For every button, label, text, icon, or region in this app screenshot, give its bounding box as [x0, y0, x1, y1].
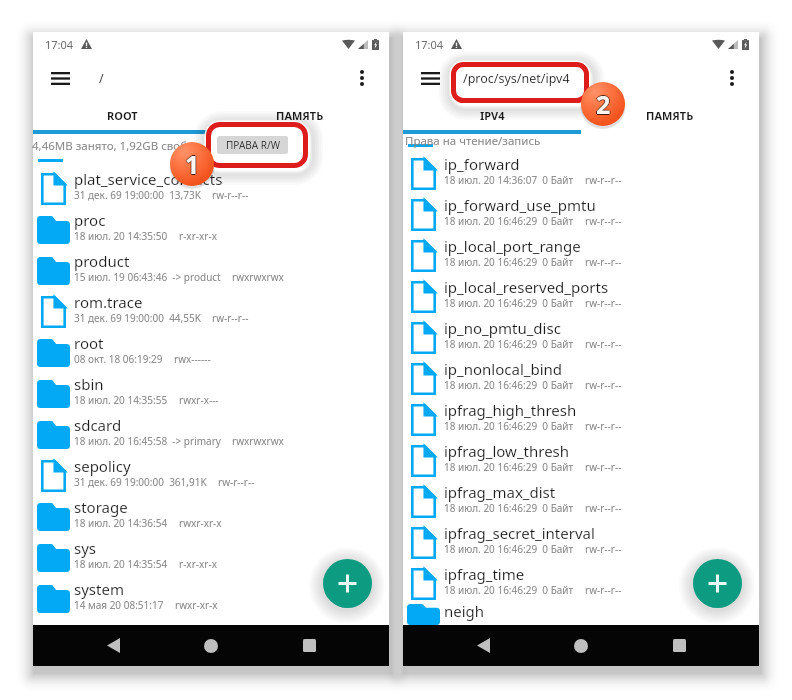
button[interactable]: ПАМЯТЬ — [581, 100, 759, 130]
button[interactable]: rom.trace — [33, 291, 389, 332]
staticText: / — [99, 70, 104, 87]
staticText: rw-r--r-- — [585, 460, 622, 474]
staticText: ip_local_port_range — [444, 236, 581, 256]
button[interactable]: Add — [693, 559, 742, 608]
staticText: sdcard — [74, 415, 122, 435]
staticText: ip_local_reserved_ports — [444, 277, 609, 297]
button[interactable]: ПРАВА R/W — [217, 136, 288, 154]
staticText: 1 — [185, 148, 200, 182]
staticText: rw-r--r-- — [585, 542, 622, 556]
staticText: 18 июл. 20 16:46:29 0 Байт — [444, 419, 574, 433]
staticText: rw-r--r-- — [585, 214, 622, 228]
button[interactable]: ip_forward_use_pmtu — [403, 194, 759, 235]
button[interactable]: ip_no_pmtu_disc — [403, 317, 759, 358]
button[interactable]: Recents — [630, 625, 728, 666]
button[interactable]: Add — [323, 559, 372, 608]
button[interactable]: IPV4 — [403, 100, 581, 130]
button[interactable]: proc — [33, 209, 389, 250]
staticText: 18 июл. 20 16:46:29 0 Байт — [444, 214, 574, 228]
staticText: Права на чтение/запись — [405, 133, 541, 149]
button[interactable]: plat_service_contacts — [33, 168, 389, 209]
staticText: 31 дек. 69 19:00:00 44,55K — [74, 311, 201, 325]
button[interactable]: More options — [347, 63, 377, 93]
button[interactable]: ip_local_port_range — [403, 235, 759, 276]
button[interactable]: ПАМЯТЬ — [211, 100, 389, 130]
button[interactable]: ip_nonlocal_bind — [403, 358, 759, 399]
button[interactable]: ipfrag_low_thresh — [403, 440, 759, 481]
button[interactable]: sepolicy — [33, 455, 389, 496]
staticText: neigh — [444, 601, 485, 621]
staticText: rwxr-xr-x — [175, 598, 218, 612]
staticText: rw-r--r-- — [585, 583, 622, 597]
staticText: rw-r--r-- — [585, 378, 622, 392]
staticText: ip_nonlocal_bind — [444, 359, 563, 379]
button[interactable]: More options — [717, 63, 747, 93]
staticText: sepolicy — [74, 456, 131, 476]
staticText: proc — [74, 210, 106, 230]
staticText: rw-r--r-- — [585, 296, 622, 310]
staticText: root — [74, 333, 104, 353]
button[interactable]: ipfrag_secret_interval — [403, 522, 759, 563]
staticText: r-xr-xr-x — [179, 557, 217, 571]
staticText: 31 дек. 69 19:00:00 13,73K — [74, 188, 201, 202]
staticText: rwxr-x--- — [179, 393, 219, 407]
staticText: rwxrwxrwx — [232, 434, 284, 448]
staticText: 18 июл. 20 16:46:29 0 Байт — [444, 255, 574, 269]
button[interactable]: Back — [434, 625, 532, 666]
button[interactable]: ipfrag_time — [403, 563, 759, 604]
staticText: 31 дек. 69 19:00:00 361,91K — [74, 475, 207, 489]
staticText: ip_forward_use_pmtu — [444, 195, 596, 215]
staticText: r-xr-xr-x — [179, 229, 217, 243]
staticText: ipfrag_max_dist — [444, 482, 556, 502]
staticText: rw-r--r-- — [212, 311, 249, 325]
staticText: ROOT — [107, 108, 138, 123]
button[interactable]: ipfrag_high_thresh — [403, 399, 759, 440]
staticText: rwxr-xr-x — [179, 516, 222, 530]
button[interactable]: Back — [64, 625, 162, 666]
staticText: 18 июл. 20 16:46:29 0 Байт — [444, 460, 574, 474]
staticText: ПАМЯТЬ — [646, 108, 694, 123]
button[interactable]: system — [33, 578, 389, 619]
staticText: 2 — [596, 86, 611, 120]
button[interactable]: sys — [33, 537, 389, 578]
staticText: 2 — [596, 87, 611, 121]
staticText: 18 июл. 20 14:36:07 0 Байт — [444, 173, 574, 187]
staticText: 15 июл. 19 06:43:46 -> product — [74, 270, 221, 284]
staticText: rwx------ — [174, 352, 211, 366]
button[interactable]: sdcard — [33, 414, 389, 455]
staticText: 2 — [596, 88, 611, 122]
staticText: system — [74, 579, 124, 599]
staticText: 18 июл. 20 16:46:29 0 Байт — [444, 378, 574, 392]
staticText: rw-r--r-- — [212, 188, 249, 202]
button[interactable]: Menu — [45, 63, 75, 93]
staticText: rw-r--r-- — [585, 337, 622, 351]
staticText: 18 июл. 20 14:35:54 — [74, 557, 168, 571]
staticText: sbin — [74, 374, 104, 394]
staticText: 14 мая 20 08:51:17 — [74, 598, 164, 612]
button[interactable]: neigh — [403, 604, 759, 625]
button[interactable]: product — [33, 250, 389, 291]
staticText: ipfrag_time — [444, 564, 525, 584]
button[interactable]: ROOT — [33, 100, 211, 130]
button[interactable]: root — [33, 332, 389, 373]
staticText: 1 — [185, 146, 200, 180]
staticText: ip_forward — [444, 154, 520, 174]
button[interactable]: ipfrag_max_dist — [403, 481, 759, 522]
button[interactable]: sbin — [33, 373, 389, 414]
button[interactable]: ip_local_reserved_ports — [403, 276, 759, 317]
staticText: ipfrag_high_thresh — [444, 400, 577, 420]
button[interactable]: Menu — [415, 63, 445, 93]
staticText: rw-r--r-- — [585, 255, 622, 269]
button[interactable]: Home — [162, 625, 260, 666]
staticText: rw-r--r-- — [585, 501, 622, 515]
button[interactable]: Home — [532, 625, 630, 666]
button[interactable]: Recents — [260, 625, 358, 666]
staticText: rw-r--r-- — [585, 173, 622, 187]
button[interactable]: ip_forward — [403, 153, 759, 194]
staticText: rom.trace — [74, 292, 143, 312]
staticText: storage — [74, 497, 128, 517]
staticText: ПРАВА R/W — [226, 138, 280, 152]
button[interactable]: storage — [33, 496, 389, 537]
staticText: ПАМЯТЬ — [276, 108, 324, 123]
staticText: 1 — [184, 147, 199, 181]
